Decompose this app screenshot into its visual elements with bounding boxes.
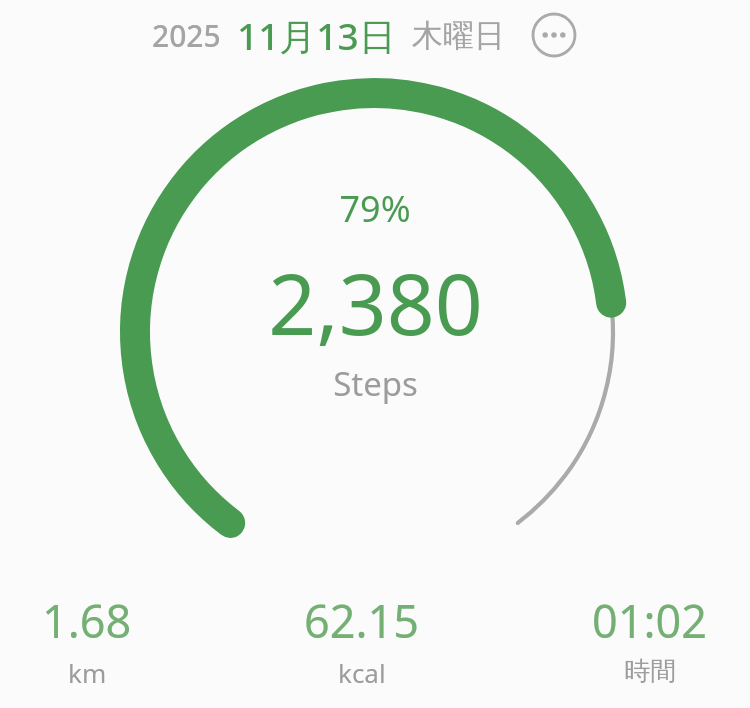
staticText: 79% (339, 184, 411, 233)
button[interactable]: 62.15 (286, 588, 438, 692)
staticText: Steps (333, 361, 418, 406)
button[interactable]: 1.68 (24, 588, 150, 692)
staticText: 2025 (152, 15, 221, 56)
button[interactable]: More options (529, 10, 579, 60)
button[interactable]: 01:02 (574, 588, 726, 690)
staticText: 11月13日 (237, 10, 396, 61)
staticText: 時間 (624, 655, 676, 688)
staticText: km (68, 655, 107, 690)
staticText: 1.68 (42, 590, 132, 651)
staticText: 01:02 (592, 590, 708, 651)
staticText: 62.15 (304, 590, 420, 651)
staticText: kcal (338, 655, 386, 690)
staticText: 木曜日 (412, 16, 505, 55)
staticText: 2,380 (268, 245, 483, 359)
button[interactable]: Daily step progress ring, 79 percent (0, 0, 750, 708)
